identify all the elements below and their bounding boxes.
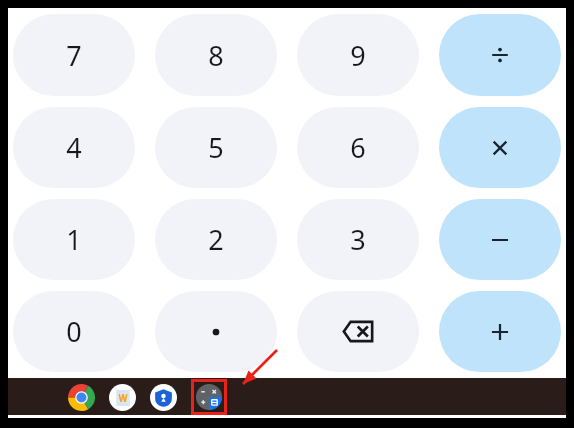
- button[interactable]: 4: [13, 107, 135, 188]
- staticText: 1: [66, 221, 82, 258]
- button[interactable]: Calculator: [191, 379, 227, 415]
- button[interactable]: Chrome: [68, 384, 95, 411]
- button[interactable]: 3: [297, 199, 419, 280]
- staticText: 3: [350, 221, 366, 258]
- button[interactable]: Decimal point: [155, 291, 277, 372]
- button[interactable]: 0: [13, 291, 135, 372]
- button[interactable]: 8: [155, 14, 277, 96]
- staticText: 9: [350, 37, 366, 74]
- button[interactable]: Subtract: [439, 199, 561, 280]
- button[interactable]: Docs: [109, 384, 136, 411]
- button[interactable]: 1: [13, 199, 135, 280]
- button[interactable]: Multiply: [439, 107, 561, 188]
- staticText: 4: [66, 129, 82, 166]
- button[interactable]: 7: [13, 14, 135, 96]
- button[interactable]: 9: [297, 14, 419, 96]
- staticText: 2: [208, 221, 224, 258]
- staticText: 6: [350, 129, 366, 166]
- staticText: 0: [66, 313, 82, 350]
- staticText: 8: [208, 37, 224, 74]
- staticText: 7: [66, 37, 82, 74]
- button[interactable]: 2: [155, 199, 277, 280]
- button[interactable]: 6: [297, 107, 419, 188]
- button[interactable]: 5: [155, 107, 277, 188]
- button[interactable]: Backspace: [297, 291, 419, 372]
- button[interactable]: Add: [439, 291, 561, 372]
- button[interactable]: Security: [150, 384, 177, 411]
- button[interactable]: Divide: [439, 14, 561, 96]
- staticText: 5: [208, 129, 224, 166]
